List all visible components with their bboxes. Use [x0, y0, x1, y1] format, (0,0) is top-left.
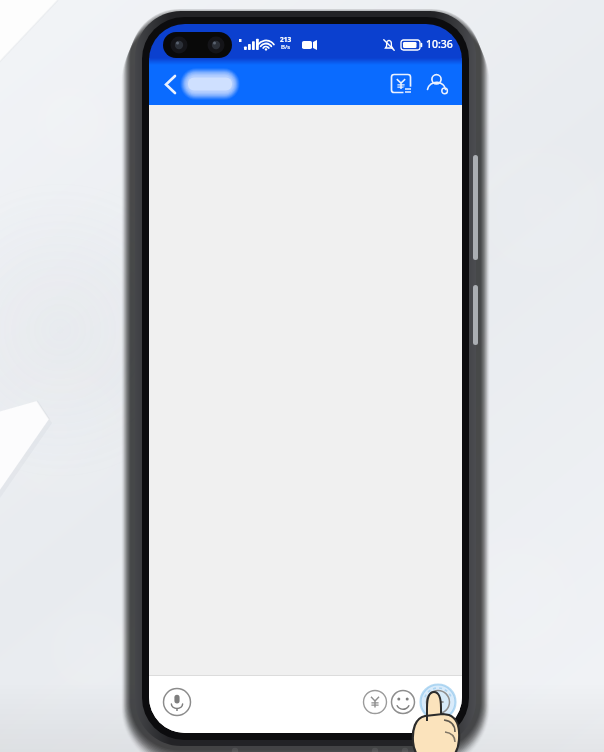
button[interactable]: More options	[415, 676, 453, 714]
button[interactable]: Conversation title	[185, 69, 245, 97]
button[interactable]: Transfer money	[386, 68, 418, 98]
button[interactable]: Send money	[359, 678, 391, 710]
button[interactable]: Emoji	[387, 678, 419, 710]
button[interactable]: Back	[161, 69, 191, 97]
button[interactable]: Voice input	[161, 678, 197, 714]
button[interactable]: Add contact	[422, 68, 454, 98]
